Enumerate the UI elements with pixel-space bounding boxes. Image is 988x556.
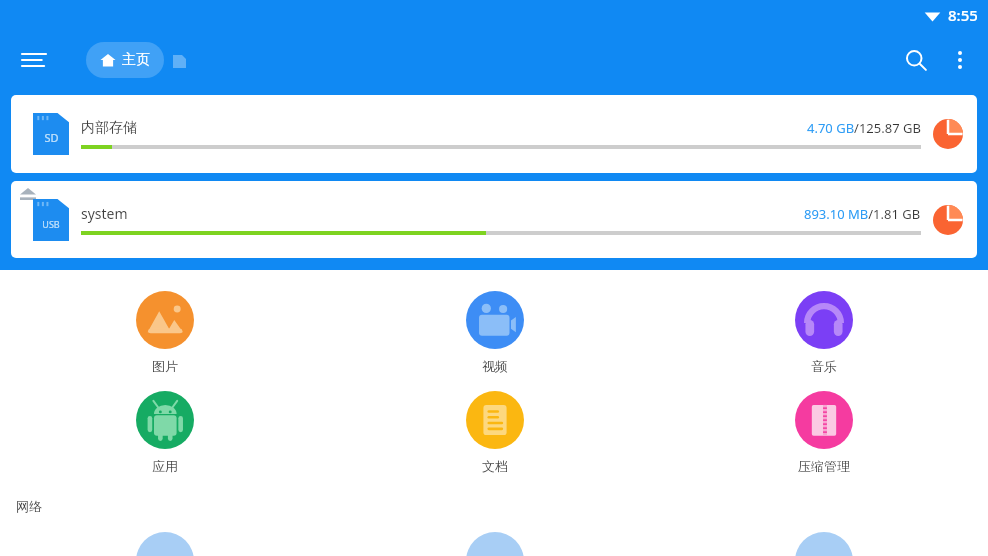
button[interactable]: Menu <box>14 40 54 80</box>
button[interactable]: SD <box>11 95 977 173</box>
staticText: 4.70 GB/125.87 GB <box>807 119 921 137</box>
staticText: 文档 <box>482 458 508 474</box>
button[interactable]: More options <box>938 38 982 82</box>
button[interactable]: 主页 <box>86 42 164 78</box>
staticText: system <box>81 204 804 223</box>
button[interactable]: 压缩管理 <box>659 387 988 478</box>
staticText: SD <box>44 130 59 145</box>
button[interactable]: 音乐 <box>659 287 988 378</box>
button[interactable]: 视频 <box>330 287 659 378</box>
staticText: 893.10 MB/1.81 GB <box>804 205 921 223</box>
staticText: 主页 <box>122 51 150 69</box>
staticText: 视频 <box>482 358 508 374</box>
button[interactable]: USB <box>11 181 977 258</box>
staticText: 图片 <box>152 358 178 374</box>
button[interactable]: 应用 <box>0 387 330 478</box>
staticText: 应用 <box>152 458 178 474</box>
button[interactable] <box>173 53 186 68</box>
staticText: 网络 <box>16 498 42 514</box>
staticText: 内部存储 <box>81 119 807 137</box>
staticText: USB <box>42 218 60 230</box>
staticText: 压缩管理 <box>798 458 850 474</box>
staticText: 音乐 <box>811 358 837 374</box>
button[interactable]: 图片 <box>0 287 330 378</box>
staticText: 8:55 <box>948 5 978 25</box>
button[interactable]: Search <box>894 38 938 82</box>
button[interactable]: 文档 <box>330 387 659 478</box>
